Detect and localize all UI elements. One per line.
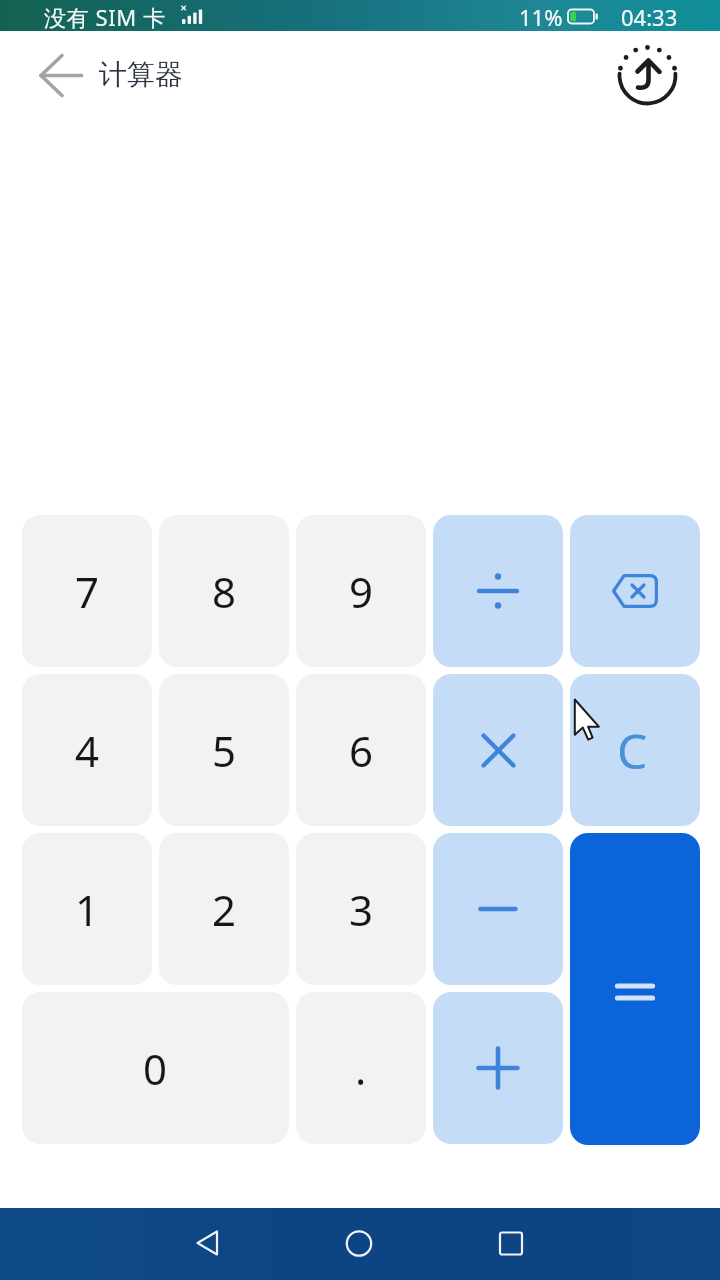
staticText: . xyxy=(355,1040,367,1097)
button[interactable] xyxy=(323,1208,395,1280)
button[interactable] xyxy=(570,515,700,667)
button[interactable] xyxy=(26,56,96,96)
staticText: 11% xyxy=(519,2,563,32)
button[interactable] xyxy=(615,43,680,108)
staticText: 0 xyxy=(143,1040,168,1097)
staticText: 8 xyxy=(212,563,237,620)
staticText: 没有 SIM 卡 xyxy=(44,2,166,32)
staticText: 4 xyxy=(75,722,100,779)
button[interactable]: 1 xyxy=(22,833,152,985)
staticText: 5 xyxy=(212,722,237,779)
button[interactable] xyxy=(433,992,563,1144)
button[interactable] xyxy=(433,833,563,985)
staticText: 04:33 xyxy=(621,2,678,32)
staticText: 1 xyxy=(75,881,100,938)
button[interactable]: 7 xyxy=(22,515,152,667)
staticText: C xyxy=(617,718,648,783)
staticText: 7 xyxy=(75,563,100,620)
staticText: 9 xyxy=(349,563,374,620)
button[interactable]: . xyxy=(296,992,426,1144)
staticText: 3 xyxy=(349,881,374,938)
staticText: 2 xyxy=(212,881,237,938)
button[interactable]: C xyxy=(570,674,700,826)
button[interactable]: 5 xyxy=(159,674,289,826)
button[interactable] xyxy=(172,1208,244,1280)
button[interactable] xyxy=(433,515,563,667)
staticText: 计算器 xyxy=(99,57,183,92)
button[interactable]: 9 xyxy=(296,515,426,667)
button[interactable]: 8 xyxy=(159,515,289,667)
button[interactable]: 2 xyxy=(159,833,289,985)
button[interactable] xyxy=(433,674,563,826)
button[interactable]: 0 xyxy=(22,992,289,1144)
button[interactable]: 6 xyxy=(296,674,426,826)
button[interactable]: 4 xyxy=(22,674,152,826)
button[interactable]: 3 xyxy=(296,833,426,985)
staticText: 6 xyxy=(349,722,374,779)
button[interactable] xyxy=(570,833,700,1145)
button[interactable] xyxy=(475,1208,547,1280)
